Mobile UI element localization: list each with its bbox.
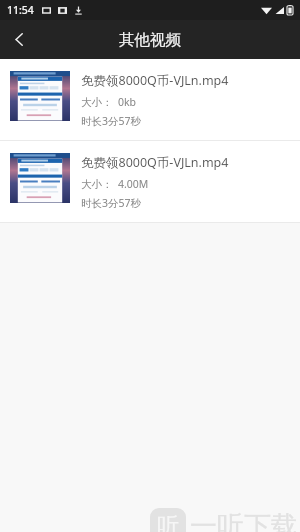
staticText: 11:54	[7, 3, 34, 17]
staticText: 免费领8000Q币-VJLn.mp4	[81, 72, 229, 89]
staticText: 一听下载	[190, 509, 298, 532]
staticText: 听	[157, 512, 179, 532]
button[interactable]: 免费领8000Q币-VJLn.mp4	[0, 141, 300, 222]
staticText: 时长3分57秒	[81, 114, 142, 128]
button[interactable]: Back	[0, 20, 39, 59]
staticText: 时长3分57秒	[81, 196, 142, 210]
staticText: 大小： 4.00M	[81, 177, 149, 191]
button[interactable]: 免费领8000Q币-VJLn.mp4	[0, 59, 300, 140]
staticText: 大小： 0kb	[81, 95, 137, 109]
staticText: 免费领8000Q币-VJLn.mp4	[81, 154, 229, 171]
staticText: 其他视频	[119, 30, 181, 50]
